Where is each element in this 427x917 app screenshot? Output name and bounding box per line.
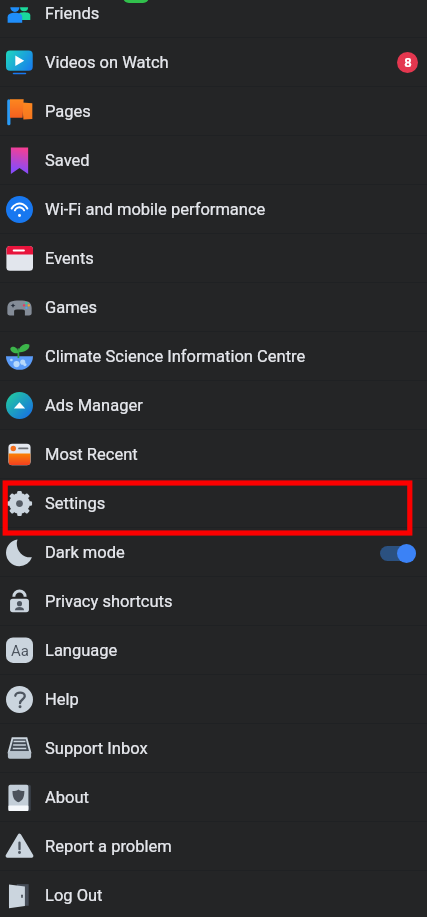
button[interactable]: Dark mode	[0, 528, 427, 577]
button[interactable]: Aa	[0, 626, 427, 675]
staticText: Aa	[11, 642, 29, 660]
staticText: About	[45, 788, 89, 807]
button[interactable]: Wi-Fi and mobile performance	[0, 185, 427, 234]
button[interactable]: Ads Manager	[0, 381, 427, 430]
staticText: Most Recent	[45, 445, 138, 464]
button[interactable]: Support Inbox	[0, 724, 427, 773]
button[interactable]: Help	[0, 675, 427, 724]
staticText: Events	[45, 249, 94, 268]
button[interactable]: Friends	[0, 0, 427, 38]
button[interactable]: Privacy shortcuts	[0, 577, 427, 626]
staticText: Report a problem	[45, 837, 172, 856]
staticText: Log Out	[45, 886, 103, 905]
button[interactable]: Report a problem	[0, 822, 427, 871]
button[interactable]: Events	[0, 234, 427, 283]
button[interactable]: Settings	[0, 479, 427, 528]
button[interactable]: Videos on Watch	[0, 38, 427, 87]
staticText: Privacy shortcuts	[45, 592, 173, 611]
staticText: Help	[45, 690, 79, 709]
staticText: Friends	[45, 4, 100, 23]
button[interactable]: Climate Science Information Centre	[0, 332, 427, 381]
staticText: Settings	[45, 494, 106, 513]
button[interactable]: Log Out	[0, 871, 427, 917]
staticText: Climate Science Information Centre	[45, 347, 306, 366]
staticText: Wi-Fi and mobile performance	[45, 200, 266, 219]
staticText: Dark mode	[45, 543, 125, 562]
staticText: Saved	[45, 151, 90, 170]
staticText: Pages	[45, 102, 91, 121]
staticText: Language	[45, 641, 118, 660]
button[interactable]: Games	[0, 283, 427, 332]
button[interactable]: Saved	[0, 136, 427, 185]
button[interactable]: Pages	[0, 87, 427, 136]
button[interactable]: About	[0, 773, 427, 822]
staticText: Videos on Watch	[45, 53, 169, 72]
staticText: Games	[45, 298, 97, 317]
button[interactable]: Most Recent	[0, 430, 427, 479]
staticText: 8	[404, 55, 412, 70]
staticText: Ads Manager	[45, 396, 143, 415]
staticText: Support Inbox	[45, 739, 148, 758]
